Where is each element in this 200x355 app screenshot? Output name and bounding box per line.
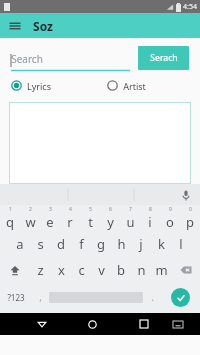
- button[interactable]: g: [91, 231, 111, 257]
- button[interactable]: n: [131, 257, 151, 283]
- button[interactable]: v: [91, 257, 111, 283]
- staticText: a: [16, 235, 24, 253]
- staticText: u: [126, 213, 135, 231]
- staticText: p: [186, 213, 194, 231]
- staticText: t: [88, 213, 93, 231]
- staticText: m: [155, 261, 168, 279]
- button[interactable]: k: [151, 231, 171, 257]
- staticText: x: [58, 261, 65, 279]
- staticText: 2: [29, 206, 32, 213]
- button[interactable]: 0: [180, 205, 200, 231]
- staticText: Serach: [150, 52, 178, 64]
- button[interactable]: b: [111, 257, 131, 283]
- button[interactable]: Lyrics: [11, 77, 93, 94]
- button[interactable]: f: [71, 231, 91, 257]
- staticText: 9: [169, 206, 172, 213]
- staticText: e: [46, 213, 54, 231]
- staticText: 5: [89, 206, 92, 213]
- button[interactable]: [9, 102, 191, 184]
- button[interactable]: 3: [40, 205, 60, 231]
- button[interactable]: s: [30, 231, 51, 257]
- staticText: v: [98, 261, 105, 279]
- staticText: 1: [9, 206, 12, 213]
- staticText: b: [117, 261, 125, 279]
- button[interactable]: Voice input: [178, 187, 194, 203]
- button[interactable]: l: [171, 231, 191, 257]
- button[interactable]: Search: [11, 45, 130, 71]
- button[interactable]: Recent apps: [130, 313, 157, 335]
- button[interactable]: Enter: [161, 283, 200, 311]
- staticText: 3: [49, 206, 52, 213]
- staticText: z: [37, 261, 44, 279]
- staticText: .: [151, 290, 154, 304]
- staticText: Artist: [123, 80, 146, 92]
- staticText: Lyrics: [27, 80, 51, 92]
- button[interactable]: Open navigation menu: [7, 18, 23, 34]
- button[interactable]: a: [9, 231, 30, 257]
- button[interactable]: 9: [160, 205, 180, 231]
- staticText: q: [6, 213, 14, 231]
- staticText: Soz: [33, 18, 53, 34]
- staticText: ,: [39, 290, 42, 304]
- staticText: o: [166, 213, 174, 231]
- staticText: w: [25, 213, 36, 231]
- button[interactable]: Backspace: [171, 257, 200, 283]
- button[interactable]: Back: [28, 313, 55, 335]
- button[interactable]: 7: [120, 205, 140, 231]
- staticText: l: [179, 235, 183, 253]
- button[interactable]: Artist: [107, 77, 189, 94]
- button[interactable]: 8: [140, 205, 160, 231]
- button[interactable]: 1: [0, 205, 20, 231]
- button[interactable]: c: [71, 257, 91, 283]
- staticText: Search: [11, 52, 43, 66]
- button[interactable]: d: [51, 231, 71, 257]
- staticText: r: [67, 213, 73, 231]
- button[interactable]: h: [111, 231, 131, 257]
- button[interactable]: m: [151, 257, 171, 283]
- button[interactable]: ?123: [0, 283, 31, 311]
- staticText: 6: [109, 206, 112, 213]
- button[interactable]: j: [131, 231, 151, 257]
- staticText: c: [78, 261, 85, 279]
- staticText: g: [97, 235, 105, 253]
- button[interactable]: z: [30, 257, 51, 283]
- staticText: 8: [149, 206, 152, 213]
- staticText: n: [137, 261, 146, 279]
- button[interactable]: Serach: [138, 46, 189, 70]
- button[interactable]: Switch keyboard: [164, 313, 191, 335]
- staticText: f: [79, 235, 84, 253]
- button[interactable]: Shift: [0, 257, 30, 283]
- staticText: 4: [69, 206, 72, 213]
- button[interactable]: Comma: [31, 283, 49, 311]
- button[interactable]: Home: [79, 313, 106, 335]
- button[interactable]: 6: [100, 205, 120, 231]
- staticText: k: [158, 235, 165, 253]
- staticText: d: [57, 235, 65, 253]
- staticText: j: [139, 235, 143, 253]
- staticText: 4:54: [183, 2, 197, 12]
- staticText: h: [117, 235, 126, 253]
- staticText: i: [148, 213, 152, 231]
- button[interactable]: 2: [20, 205, 40, 231]
- button[interactable]: x: [51, 257, 71, 283]
- button[interactable]: 4: [60, 205, 80, 231]
- staticText: y: [107, 213, 114, 231]
- staticText: s: [37, 235, 44, 253]
- staticText: 7: [129, 206, 132, 213]
- button[interactable]: Period: [143, 283, 161, 311]
- staticText: 0: [189, 206, 192, 213]
- staticText: ?123: [7, 292, 25, 303]
- button[interactable]: 5: [80, 205, 100, 231]
